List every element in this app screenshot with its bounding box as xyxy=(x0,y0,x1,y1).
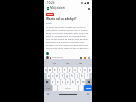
staticText: e xyxy=(54,68,56,72)
button[interactable]: tak xyxy=(78,61,84,66)
staticText: NOWE xyxy=(47,13,53,16)
staticText: r xyxy=(59,68,61,72)
staticText: t xyxy=(64,68,66,72)
button[interactable]: m xyxy=(81,79,85,85)
staticText: b xyxy=(72,80,74,84)
staticText: Warto od co zdobyć? xyxy=(46,17,77,21)
staticText: k xyxy=(81,74,83,78)
button[interactable]: r xyxy=(58,67,62,73)
button[interactable]: v xyxy=(66,79,70,85)
staticText: Ut enim ad minim veniam quis nostrud exe… xyxy=(46,26,90,50)
staticText: x xyxy=(57,80,59,84)
staticText: d xyxy=(56,74,58,78)
button[interactable]: c xyxy=(61,79,65,85)
staticText: q xyxy=(45,68,47,72)
button[interactable]: f xyxy=(60,73,64,79)
staticText: a xyxy=(48,74,50,78)
staticText: sie xyxy=(53,62,56,65)
staticText: w xyxy=(49,68,52,72)
staticText: czytaj xyxy=(46,22,52,25)
button[interactable]: Mój dzień xyxy=(44,5,92,11)
staticText: ?123 xyxy=(46,87,51,90)
button[interactable]: z xyxy=(51,79,55,85)
staticText: s xyxy=(52,74,54,78)
button[interactable]: More options xyxy=(87,7,90,10)
staticText: Odpowiedz xyxy=(52,56,64,59)
button[interactable]: s xyxy=(51,73,54,79)
staticText: y xyxy=(69,68,71,72)
staticText: l xyxy=(87,74,88,78)
button[interactable]: d xyxy=(55,73,59,79)
button[interactable]: x xyxy=(56,79,60,85)
staticText: j xyxy=(77,74,78,78)
button[interactable]: ?123 xyxy=(44,85,52,91)
staticText: . xyxy=(81,87,82,90)
button[interactable]: . xyxy=(79,85,83,91)
staticText: 10:26 xyxy=(47,1,55,5)
staticText: wyślij xyxy=(86,87,91,90)
button[interactable]: polski xyxy=(58,85,78,91)
staticText: h xyxy=(71,74,73,78)
staticText: m xyxy=(82,80,85,84)
button[interactable]: h xyxy=(70,73,74,79)
staticText: nie xyxy=(66,62,70,65)
button[interactable]: p xyxy=(88,67,92,73)
button[interactable]: k xyxy=(80,73,84,79)
staticText: tak xyxy=(79,62,83,65)
button[interactable]: u xyxy=(73,67,77,73)
button[interactable]: n xyxy=(76,79,80,85)
button[interactable]: q xyxy=(44,67,47,73)
staticText: i xyxy=(80,68,81,72)
button[interactable]: e xyxy=(53,67,57,73)
button[interactable]: sie xyxy=(52,61,57,66)
button[interactable]: Attach xyxy=(84,57,86,59)
button[interactable]: Shift xyxy=(44,79,50,85)
button[interactable]: y xyxy=(68,67,72,73)
button[interactable]: l xyxy=(85,73,89,79)
staticText: Mój dzień xyxy=(50,6,65,10)
button[interactable]: g xyxy=(65,73,69,79)
button[interactable]: , xyxy=(53,85,57,91)
staticText: c xyxy=(62,80,64,84)
button[interactable]: Backspace xyxy=(86,79,92,85)
button[interactable]: o xyxy=(83,67,87,73)
button[interactable]: Enter xyxy=(84,85,92,91)
staticText: f xyxy=(62,74,63,78)
staticText: o xyxy=(84,68,86,72)
staticText: v xyxy=(67,80,69,84)
staticText: g xyxy=(66,74,68,78)
button[interactable]: b xyxy=(71,79,75,85)
staticText: polski xyxy=(65,87,71,90)
staticText: u xyxy=(74,68,76,72)
staticText: n xyxy=(77,80,79,84)
button[interactable]: nie xyxy=(65,61,71,66)
button[interactable]: j xyxy=(75,73,79,79)
button[interactable]: w xyxy=(48,67,52,73)
staticText: p xyxy=(89,68,91,72)
button[interactable]: t xyxy=(63,67,67,73)
button[interactable]: i xyxy=(78,67,82,73)
button[interactable]: a xyxy=(47,73,50,79)
staticText: z xyxy=(52,80,54,84)
